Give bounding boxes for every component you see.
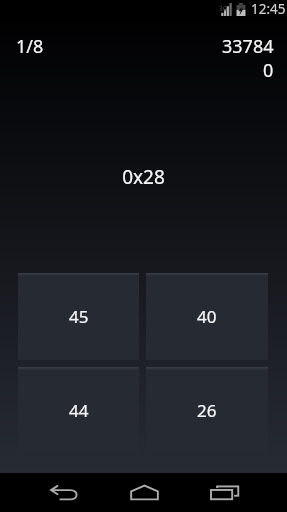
staticText: 0 (263, 58, 274, 83)
button[interactable]: 40 (146, 273, 268, 360)
staticText: 33784 (222, 34, 274, 59)
staticText: 12:45 (251, 0, 286, 18)
button[interactable]: Home (118, 473, 170, 512)
button[interactable]: Back (38, 473, 90, 512)
staticText: 1/8 (16, 34, 44, 59)
staticText: 40 (197, 305, 217, 328)
staticText: 26 (197, 399, 217, 422)
staticText: 3G (219, 4, 228, 13)
button[interactable]: Recents (198, 473, 250, 512)
button[interactable]: 44 (18, 367, 139, 454)
button[interactable]: 45 (18, 273, 139, 360)
staticText: 45 (69, 305, 89, 328)
staticText: 0x28 (122, 164, 165, 190)
staticText: 44 (69, 399, 89, 422)
button[interactable]: 26 (146, 367, 268, 454)
